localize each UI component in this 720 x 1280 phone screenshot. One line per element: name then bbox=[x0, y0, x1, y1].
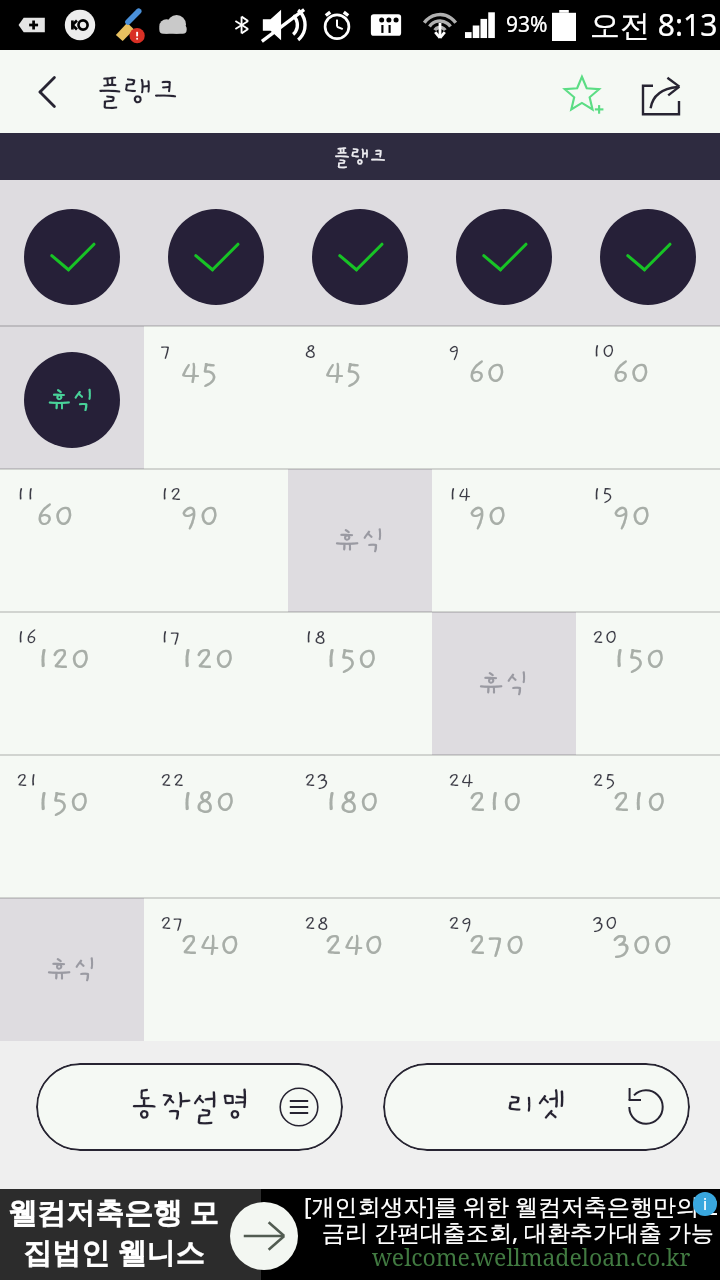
button[interactable]: 동작설명 bbox=[36, 1063, 343, 1151]
button[interactable]: 9 bbox=[432, 326, 576, 469]
button[interactable]: 18 bbox=[288, 612, 432, 755]
button[interactable]: 25 bbox=[576, 755, 720, 898]
button[interactable]: 30 bbox=[576, 898, 720, 1041]
button[interactable]: 14 bbox=[432, 469, 576, 612]
button[interactable] bbox=[144, 180, 288, 326]
staticText: 10 bbox=[592, 340, 616, 364]
button[interactable] bbox=[576, 180, 720, 326]
staticText: 휴식 bbox=[334, 525, 387, 557]
button[interactable]: 휴식 bbox=[288, 469, 432, 612]
button[interactable]: 11 bbox=[0, 469, 144, 612]
staticText: 210 bbox=[612, 784, 668, 821]
staticText: 120 bbox=[180, 641, 236, 678]
staticText: 120 bbox=[36, 641, 92, 678]
staticText: 28 bbox=[304, 912, 330, 936]
button[interactable]: Share bbox=[634, 50, 720, 133]
button[interactable]: 28 bbox=[288, 898, 432, 1041]
button[interactable]: 휴식 bbox=[0, 898, 144, 1041]
staticText: 240 bbox=[180, 927, 242, 964]
staticText: 90 bbox=[468, 498, 509, 535]
staticText: 45 bbox=[180, 355, 219, 392]
button[interactable]: 15 bbox=[576, 469, 720, 612]
button[interactable] bbox=[432, 180, 576, 326]
staticText: 27 bbox=[160, 912, 184, 936]
button[interactable] bbox=[0, 180, 144, 326]
staticText: 오전 8:13 bbox=[590, 4, 718, 45]
button[interactable]: 20 bbox=[576, 612, 720, 755]
staticText: 300 bbox=[612, 927, 675, 964]
staticText: 집법인 웰니스 bbox=[23, 1232, 205, 1272]
staticText: 180 bbox=[180, 784, 237, 821]
staticText: [개인회생자]를 위한 웰컴저축은행만의 2 bbox=[304, 1190, 719, 1221]
button[interactable]: 8 bbox=[288, 326, 432, 469]
staticText: 9 bbox=[448, 340, 461, 364]
button[interactable]: 16 bbox=[0, 612, 144, 755]
button[interactable]: 휴식 bbox=[0, 326, 144, 469]
staticText: 플랭크 bbox=[96, 75, 180, 109]
staticText: 45 bbox=[324, 355, 363, 392]
staticText: 웰컴저축은행 모 bbox=[8, 1192, 219, 1232]
staticText: 15 bbox=[592, 483, 614, 507]
staticText: 리셋 bbox=[506, 1088, 567, 1125]
staticText: 60 bbox=[612, 355, 652, 392]
staticText: 7 bbox=[160, 340, 172, 364]
button[interactable]: 17 bbox=[144, 612, 288, 755]
staticText: 30 bbox=[592, 912, 619, 936]
button[interactable]: 27 bbox=[144, 898, 288, 1041]
button[interactable]: 22 bbox=[144, 755, 288, 898]
button[interactable]: 웰컴저축은행 모 bbox=[0, 1189, 720, 1280]
button[interactable]: 23 bbox=[288, 755, 432, 898]
button[interactable]: 21 bbox=[0, 755, 144, 898]
staticText: i bbox=[703, 1193, 708, 1215]
staticText: 240 bbox=[324, 927, 386, 964]
button[interactable]: 10 bbox=[576, 326, 720, 469]
staticText: 150 bbox=[324, 641, 379, 678]
staticText: 150 bbox=[612, 641, 667, 678]
staticText: 플랭크 bbox=[333, 146, 388, 168]
staticText: 210 bbox=[468, 784, 524, 821]
staticText: 동작설명 bbox=[129, 1088, 251, 1125]
staticText: 90 bbox=[180, 498, 221, 535]
staticText: 23 bbox=[304, 769, 330, 793]
staticText: 60 bbox=[468, 355, 508, 392]
staticText: 18 bbox=[304, 626, 327, 650]
button[interactable]: 24 bbox=[432, 755, 576, 898]
button[interactable]: 29 bbox=[432, 898, 576, 1041]
button[interactable]: Back bbox=[0, 50, 96, 133]
staticText: 14 bbox=[448, 483, 472, 507]
staticText: 20 bbox=[592, 626, 619, 650]
staticText: 25 bbox=[592, 769, 617, 793]
staticText: 16 bbox=[16, 626, 38, 650]
staticText: 93% bbox=[506, 10, 548, 39]
staticText: 60 bbox=[36, 498, 76, 535]
staticText: 180 bbox=[324, 784, 381, 821]
staticText: 150 bbox=[36, 784, 91, 821]
staticText: 90 bbox=[612, 498, 653, 535]
staticText: 17 bbox=[160, 626, 182, 650]
staticText: 휴식 bbox=[46, 954, 99, 986]
staticText: 금리 간편대출조회, 대환추가대출 가능 bbox=[322, 1216, 715, 1247]
staticText: 22 bbox=[160, 769, 186, 793]
staticText: 24 bbox=[448, 769, 474, 793]
button[interactable]: 리셋 bbox=[383, 1063, 690, 1151]
staticText: 11 bbox=[16, 483, 36, 507]
staticText: 휴식 bbox=[47, 385, 97, 415]
staticText: welcome.wellmadeloan.co.kr bbox=[372, 1241, 691, 1272]
staticText: 12 bbox=[160, 483, 183, 507]
staticText: 21 bbox=[16, 769, 39, 793]
button[interactable]: 12 bbox=[144, 469, 288, 612]
button[interactable]: 휴식 bbox=[432, 612, 576, 755]
button[interactable]: Add to favorites bbox=[548, 50, 634, 133]
button[interactable]: 7 bbox=[144, 326, 288, 469]
staticText: 휴식 bbox=[478, 668, 531, 700]
button[interactable] bbox=[288, 180, 432, 326]
staticText: 270 bbox=[468, 927, 527, 964]
staticText: 29 bbox=[448, 912, 473, 936]
staticText: 8 bbox=[304, 340, 318, 364]
